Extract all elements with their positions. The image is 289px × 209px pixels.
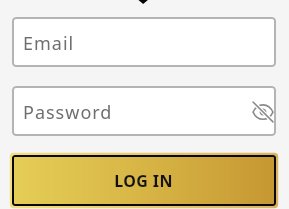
staticText: Email <box>23 31 75 56</box>
staticText: LOG IN <box>114 170 173 192</box>
button[interactable]: Password <box>12 86 276 136</box>
button[interactable]: Email <box>12 17 276 67</box>
button[interactable]: Show password <box>250 98 276 124</box>
button[interactable]: LOG IN <box>12 155 276 206</box>
staticText: Password <box>23 100 113 125</box>
